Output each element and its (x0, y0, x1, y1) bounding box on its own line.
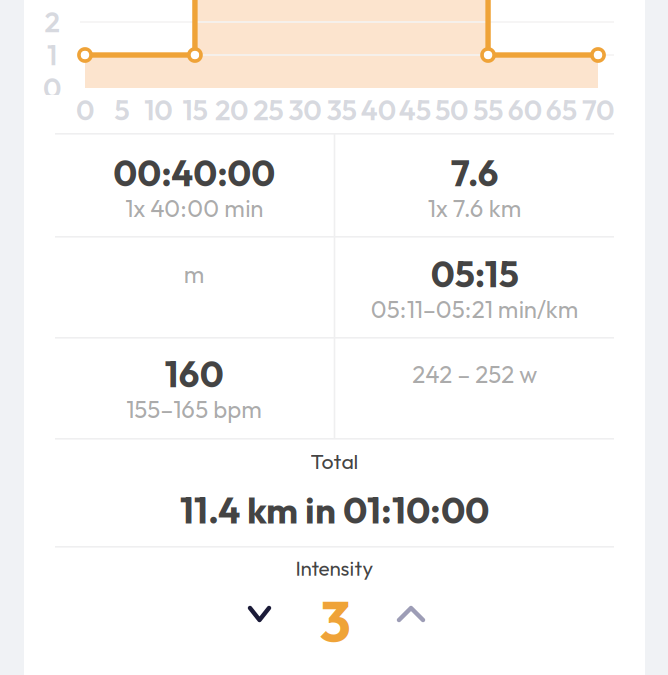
staticText: 11.4 km in 01:10:00 (180, 487, 489, 533)
staticText: 45 (399, 92, 431, 128)
staticText: 10 (144, 92, 172, 128)
staticText: 0 (76, 92, 94, 128)
staticText: 2 (44, 4, 59, 40)
staticText: 3 (319, 586, 350, 656)
staticText: 160 (165, 351, 224, 397)
staticText: 40 (361, 92, 396, 128)
staticText: 242 – 252 w (412, 359, 537, 389)
staticText: 65 (546, 92, 577, 128)
staticText: Total (310, 448, 358, 474)
staticText: 60 (508, 92, 542, 128)
staticText: 55 (473, 92, 503, 128)
staticText: 35 (326, 92, 356, 128)
staticText: 20 (215, 92, 248, 128)
staticText: 155–165 bpm (126, 394, 262, 424)
staticText: 00:40:00 (113, 150, 275, 196)
staticText: 1x 40:00 min (125, 193, 263, 223)
staticText: 25 (253, 92, 283, 128)
button[interactable]: Decrease intensity (234, 583, 285, 645)
staticText: 15 (182, 92, 207, 128)
staticText: 05:15 (431, 251, 519, 297)
button[interactable]: Increase intensity (383, 583, 439, 645)
staticText: 50 (435, 92, 468, 128)
staticText: 30 (288, 92, 321, 128)
staticText: 0 (43, 70, 61, 106)
staticText: 05:11–05:21 min/km (371, 294, 579, 324)
staticText: 5 (114, 92, 129, 128)
staticText: 1x 7.6 km (428, 193, 522, 223)
staticText: 70 (582, 92, 614, 128)
staticText: Intensity (295, 555, 373, 581)
staticText: 7.6 (451, 150, 499, 196)
staticText: m (184, 259, 205, 289)
staticText: 1 (47, 37, 57, 73)
